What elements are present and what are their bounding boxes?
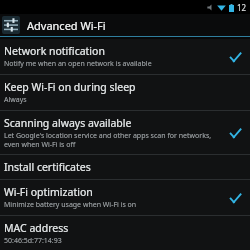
button[interactable]: Toggle Scanning always available <box>226 124 244 142</box>
staticText: Notify me when an open network is availa… <box>4 59 152 69</box>
staticText: Advanced Wi-Fi <box>27 18 106 33</box>
button[interactable]: Install certificates <box>0 155 250 179</box>
staticText: Scanning always available <box>4 116 132 130</box>
staticText: Let Google's location service and other … <box>4 131 226 149</box>
staticText: MAC address <box>4 221 69 235</box>
staticText: 50:46:5d:77:14:93 <box>4 236 62 245</box>
button[interactable]: Toggle Network notification <box>226 48 244 66</box>
staticText: Wi-Fi optimization <box>4 185 93 199</box>
button[interactable]: Advanced Wi-Fi <box>0 14 250 36</box>
staticText: Network notification <box>4 44 105 58</box>
button[interactable]: Scanning always available <box>0 111 250 154</box>
button[interactable]: Wi-Fi optimization <box>0 180 250 215</box>
staticText: Minimize battery usage when Wi-Fi is on <box>4 200 137 210</box>
button[interactable]: MAC address <box>0 216 250 250</box>
staticText: Always <box>4 95 27 105</box>
button[interactable]: Network notification <box>0 39 250 74</box>
staticText: Install certificates <box>4 160 91 174</box>
button[interactable]: Toggle Wi-Fi optimization <box>226 189 244 207</box>
staticText: 12 <box>237 2 247 13</box>
button[interactable]: Keep Wi-Fi on during sleep <box>0 75 250 110</box>
staticText: Keep Wi-Fi on during sleep <box>4 80 136 94</box>
